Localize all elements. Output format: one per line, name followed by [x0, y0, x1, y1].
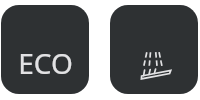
button[interactable]: ECO [1, 5, 89, 94]
staticText: ECO [18, 44, 73, 82]
button[interactable]: Rear window defrost [110, 5, 198, 94]
